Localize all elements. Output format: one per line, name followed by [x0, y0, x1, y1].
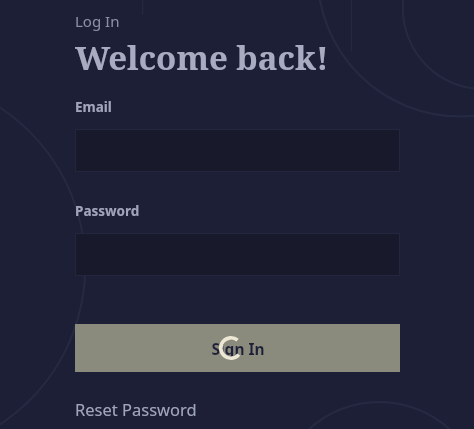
- staticText: Welcome back!: [75, 35, 329, 80]
- button[interactable]: Sign In: [75, 324, 400, 372]
- button[interactable]: Reset Password: [75, 398, 197, 420]
- staticText: Log In: [75, 11, 120, 31]
- staticText: Reset Password: [75, 398, 197, 420]
- staticText: Password: [75, 202, 140, 220]
- staticText: Email: [75, 98, 112, 116]
- staticText: Sign In: [211, 338, 265, 359]
